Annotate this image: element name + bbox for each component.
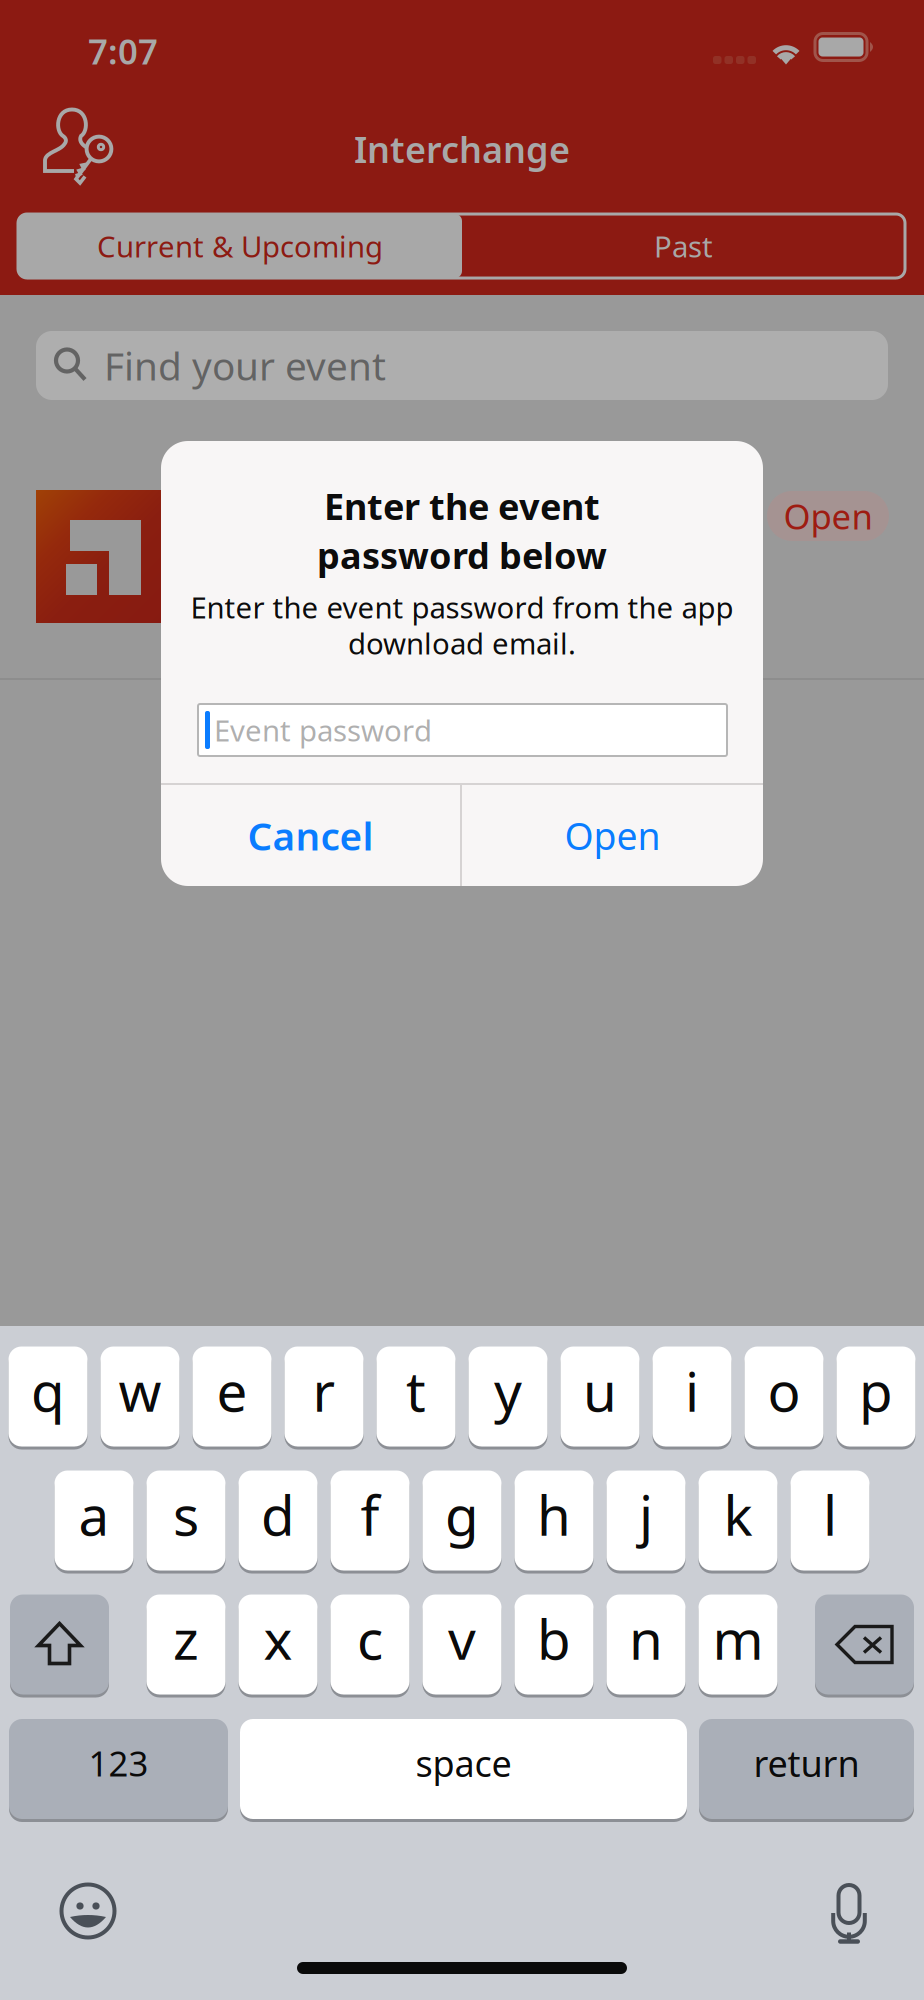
staticText: Past <box>654 226 713 265</box>
staticText: h <box>537 1478 571 1551</box>
staticText: s <box>173 1478 199 1551</box>
button[interactable]: h <box>514 1469 593 1572</box>
button[interactable]: Open <box>767 491 889 541</box>
staticText: n <box>629 1602 663 1675</box>
button[interactable]: e <box>192 1345 271 1448</box>
staticText: 7:07 <box>88 28 158 74</box>
button[interactable]: q <box>8 1345 87 1448</box>
staticText: Current & Upcoming <box>97 226 383 265</box>
button[interactable]: d <box>238 1469 317 1572</box>
staticText: Enter the event <box>324 482 600 530</box>
button[interactable]: l <box>790 1469 869 1572</box>
staticText: return <box>753 1739 859 1787</box>
button[interactable]: Account <box>40 105 120 190</box>
button[interactable]: c <box>330 1593 409 1696</box>
button[interactable]: return <box>699 1717 914 1820</box>
button[interactable]: t <box>376 1345 455 1448</box>
staticText: Open <box>783 493 872 539</box>
staticText: x <box>263 1602 292 1675</box>
staticText: download email. <box>348 623 576 662</box>
button[interactable]: v <box>422 1593 501 1696</box>
button[interactable]: Shift <box>10 1593 109 1696</box>
staticText: Interchange <box>354 125 570 173</box>
staticText: Event password <box>214 710 432 749</box>
button[interactable]: 123 <box>9 1717 228 1820</box>
staticText: Enter the event password from the app <box>190 587 733 626</box>
staticText: a <box>78 1478 109 1551</box>
staticText: l <box>823 1478 837 1551</box>
button[interactable]: w <box>100 1345 179 1448</box>
button[interactable]: Delete <box>815 1593 914 1696</box>
button[interactable]: j <box>606 1469 685 1572</box>
button[interactable]: Cancel <box>161 785 460 886</box>
staticText: Open <box>564 811 660 860</box>
staticText: r <box>312 1354 335 1427</box>
staticText: c <box>357 1602 383 1675</box>
button[interactable]: f <box>330 1469 409 1572</box>
staticText: w <box>118 1354 161 1427</box>
staticText: password below <box>317 531 607 579</box>
staticText: 123 <box>88 1740 148 1786</box>
staticText: i <box>685 1354 699 1427</box>
staticText: o <box>767 1354 800 1427</box>
button[interactable]: z <box>146 1593 225 1696</box>
staticText: g <box>445 1478 479 1551</box>
button[interactable]: Past <box>462 214 905 278</box>
button[interactable]: a <box>54 1469 133 1572</box>
staticText: e <box>216 1354 247 1427</box>
button[interactable]: space <box>240 1717 687 1820</box>
staticText: m <box>712 1602 763 1675</box>
button[interactable]: g <box>422 1469 501 1572</box>
staticText: y <box>494 1354 522 1427</box>
button[interactable]: b <box>514 1593 593 1696</box>
button[interactable]: Find your event <box>36 331 888 400</box>
button[interactable]: s <box>146 1469 225 1572</box>
staticText: p <box>859 1354 893 1427</box>
staticText: j <box>639 1478 653 1551</box>
button[interactable]: Open <box>462 785 763 886</box>
staticText: v <box>448 1602 476 1675</box>
staticText: space <box>415 1739 511 1787</box>
staticText: t <box>406 1354 426 1427</box>
staticText: z <box>173 1602 199 1675</box>
button[interactable]: Emoji <box>59 1882 117 1940</box>
staticText: f <box>360 1478 379 1551</box>
staticText: Cancel <box>247 810 373 861</box>
staticText: Find your event <box>104 340 386 391</box>
button[interactable]: Dictate <box>831 1885 867 1942</box>
button[interactable]: x <box>238 1593 317 1696</box>
button[interactable]: n <box>606 1593 685 1696</box>
button[interactable]: u <box>560 1345 639 1448</box>
button[interactable]: r <box>284 1345 363 1448</box>
button[interactable]: i <box>652 1345 731 1448</box>
button[interactable]: y <box>468 1345 547 1448</box>
staticText: b <box>537 1602 571 1675</box>
button[interactable]: Current & Upcoming <box>18 214 462 278</box>
button[interactable]: m <box>698 1593 777 1696</box>
staticText: k <box>723 1478 752 1551</box>
button[interactable]: k <box>698 1469 777 1572</box>
staticText: u <box>583 1354 617 1427</box>
button[interactable]: p <box>836 1345 915 1448</box>
button[interactable]: o <box>744 1345 823 1448</box>
staticText: d <box>261 1478 295 1551</box>
staticText: q <box>31 1354 65 1427</box>
